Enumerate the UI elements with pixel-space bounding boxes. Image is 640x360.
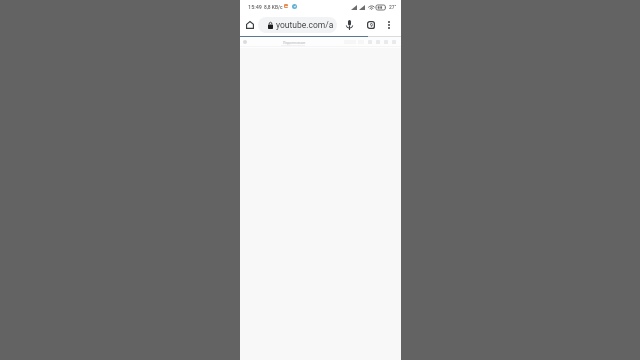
button[interactable]: Voice search — [343, 18, 356, 31]
button[interactable]: Open tabs — [364, 18, 377, 31]
staticText: 9 — [370, 22, 373, 28]
button[interactable]: More options — [382, 18, 395, 31]
staticText: youtube.com/a — [276, 20, 334, 30]
staticText: 27 — [389, 4, 395, 10]
staticText: Подключение — [283, 41, 306, 45]
button[interactable]: Home — [243, 18, 256, 31]
staticText: 15:49 — [248, 4, 262, 10]
button[interactable]: youtube.com/a — [258, 17, 337, 33]
staticText: 8,8 KB/c — [264, 4, 283, 10]
